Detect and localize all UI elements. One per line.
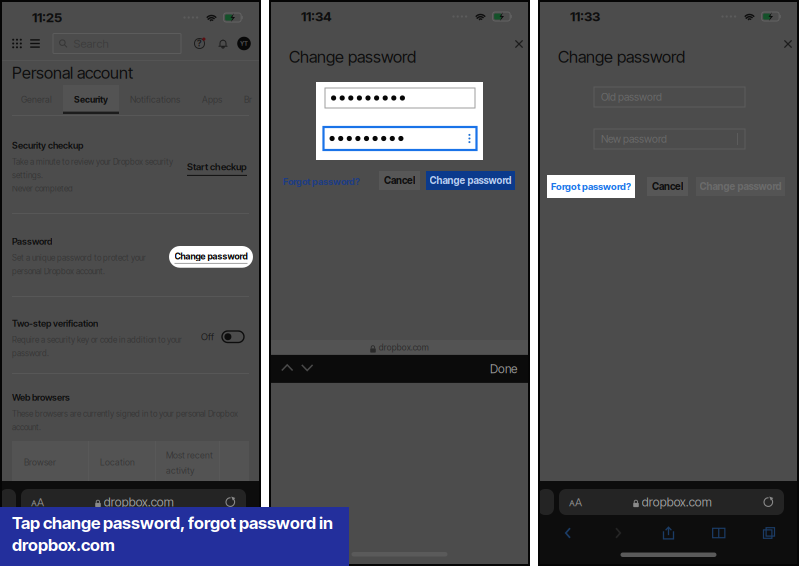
button[interactable]: Forgot password? <box>281 170 362 193</box>
staticText: Security <box>74 94 108 105</box>
button[interactable]: Change password <box>169 246 253 268</box>
button[interactable]: Bookmarks <box>704 522 734 544</box>
staticText: dropbox.com <box>12 535 115 555</box>
button[interactable]: Forward <box>603 522 633 544</box>
button[interactable]: Menu <box>27 33 43 53</box>
button[interactable]: Forgot password? <box>547 175 635 198</box>
button[interactable]: Help <box>190 33 209 53</box>
staticText: Location <box>100 457 135 467</box>
staticText: Tap change password, forgot password in <box>12 513 333 533</box>
staticText: Old password <box>601 91 662 103</box>
staticText: Most recent <box>166 450 213 460</box>
staticText: 11:33 <box>570 9 600 24</box>
staticText: YT <box>240 40 248 47</box>
staticText: account. <box>12 422 41 432</box>
staticText: Change password <box>174 251 247 261</box>
button[interactable]: Bookmarks <box>166 522 196 544</box>
button[interactable]: Security <box>63 85 119 114</box>
staticText: Start checkup <box>187 161 247 172</box>
staticText: ᴀA <box>569 494 582 509</box>
staticText: Done <box>490 362 517 376</box>
staticText: dropbox.com <box>642 495 712 509</box>
staticText: Change password <box>699 181 781 192</box>
staticText: Off <box>201 331 214 342</box>
staticText: personal Dropbox account. <box>12 266 105 276</box>
button[interactable]: Close <box>510 36 528 52</box>
button[interactable]: Br <box>233 85 263 114</box>
button[interactable]: Tabs <box>216 522 246 544</box>
button[interactable]: Done <box>480 355 527 383</box>
staticText: settings. <box>12 170 43 180</box>
staticText: Search <box>73 37 108 50</box>
button[interactable]: Change password <box>696 177 785 196</box>
staticText: dropbox.com <box>379 342 429 352</box>
staticText: Cancel <box>384 175 415 186</box>
button[interactable]: Back <box>15 522 45 544</box>
staticText: Notifications <box>130 94 180 105</box>
staticText: ? <box>197 38 202 48</box>
staticText: Never completed <box>12 184 73 193</box>
staticText: dropbox.com <box>104 495 174 509</box>
staticText: General <box>21 94 52 105</box>
staticText: Change password <box>429 175 511 186</box>
staticText: Change password <box>558 47 685 66</box>
staticText: Forgot password? <box>551 181 631 192</box>
button[interactable]: Apps <box>191 85 233 114</box>
staticText: activity <box>166 465 194 476</box>
button[interactable]: Tabs <box>754 522 784 544</box>
staticText: Browser <box>24 457 56 467</box>
staticText: Password <box>12 236 52 247</box>
button[interactable]: Notifications <box>215 33 231 53</box>
staticText: 11:25 <box>32 10 62 25</box>
button[interactable]: Forward <box>65 522 95 544</box>
staticText: password. <box>12 348 49 358</box>
staticText: ᴀA <box>31 494 44 509</box>
button[interactable]: Search <box>53 33 181 53</box>
button[interactable]: Share <box>115 522 145 544</box>
staticText: These browsers are currently signed in t… <box>12 409 238 419</box>
staticText: New password <box>601 133 667 145</box>
staticText: Apps <box>202 94 222 105</box>
staticText: Change password <box>289 47 416 66</box>
staticText: 11:34 <box>301 9 332 24</box>
button[interactable]: Next field <box>292 355 322 381</box>
button[interactable]: Share <box>653 522 683 544</box>
staticText: Security checkup <box>12 140 83 151</box>
button[interactable]: All apps <box>9 33 25 53</box>
staticText: Forgot password? <box>283 176 360 187</box>
staticText: Two-step verification <box>12 318 98 329</box>
button[interactable]: Cancel <box>379 171 420 190</box>
button[interactable]: Cancel <box>647 177 688 196</box>
button[interactable]: General <box>10 85 63 114</box>
button[interactable]: Notifications <box>119 85 191 114</box>
staticText: Personal account <box>12 63 133 82</box>
staticText: Set a unique password to protect your <box>12 253 146 263</box>
button[interactable]: Two-step verification, off <box>222 331 244 342</box>
staticText: Cancel <box>652 181 683 192</box>
staticText: Take a minute to review your Dropbox sec… <box>12 157 173 167</box>
button[interactable]: Back <box>553 522 583 544</box>
staticText: Web browsers <box>12 392 70 403</box>
button[interactable]: Start checkup <box>187 161 247 176</box>
button[interactable]: Account <box>236 33 252 53</box>
staticText: Require a security key or code in additi… <box>12 335 182 345</box>
staticText: Br <box>244 94 252 105</box>
button[interactable]: Change password <box>426 171 515 190</box>
button[interactable]: Previous field <box>272 355 302 381</box>
button[interactable]: Close <box>779 36 797 52</box>
